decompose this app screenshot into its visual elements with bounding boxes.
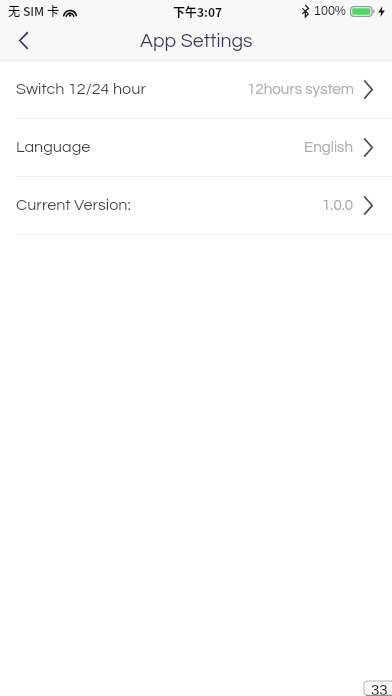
button[interactable]: Back bbox=[0, 22, 46, 61]
staticText: 1.0.0 bbox=[322, 198, 354, 214]
staticText: Current Version: bbox=[16, 197, 131, 214]
staticText: 无 SIM 卡 bbox=[8, 2, 60, 20]
staticText: English bbox=[304, 140, 354, 156]
staticText: App Settings bbox=[140, 31, 253, 51]
staticText: 33 bbox=[371, 681, 388, 695]
button[interactable]: Switch 12/24 hour bbox=[0, 61, 392, 119]
button[interactable]: Language bbox=[0, 119, 392, 177]
staticText: Switch 12/24 hour bbox=[16, 81, 146, 98]
staticText: 100% bbox=[314, 4, 346, 18]
staticText: 下午3:07 bbox=[173, 3, 223, 20]
staticText: 12hours system bbox=[247, 82, 354, 98]
button[interactable]: Current Version: bbox=[0, 177, 392, 235]
staticText: Language bbox=[16, 139, 91, 156]
